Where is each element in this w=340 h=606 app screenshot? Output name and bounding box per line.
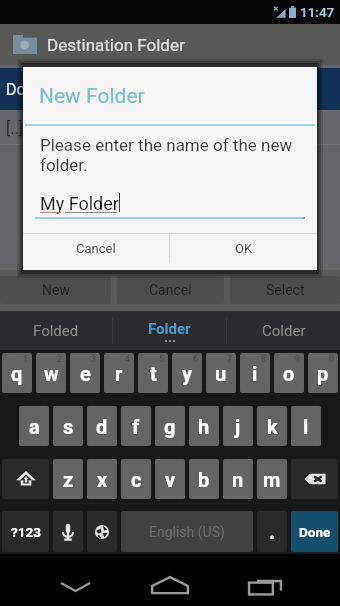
staticText: 11:47 bbox=[300, 4, 335, 20]
staticText: Please enter the name of the new folder. bbox=[40, 135, 298, 175]
staticText: m bbox=[263, 468, 281, 491]
button[interactable]: e bbox=[70, 353, 100, 393]
staticText: 7 bbox=[227, 354, 233, 365]
button[interactable]: q bbox=[2, 353, 32, 393]
button[interactable]: i bbox=[240, 353, 270, 393]
staticText: Destination Folder bbox=[47, 35, 185, 55]
staticText: e bbox=[80, 362, 91, 385]
staticText: Downloads bbox=[6, 80, 86, 99]
button[interactable]: m bbox=[257, 459, 287, 499]
button[interactable]: New bbox=[0, 276, 111, 304]
staticText: My Folder bbox=[40, 193, 119, 214]
staticText: s bbox=[63, 415, 74, 438]
staticText: OK bbox=[235, 241, 253, 256]
staticText: Cancel bbox=[76, 241, 116, 256]
staticText: z bbox=[63, 468, 74, 491]
button[interactable]: Back bbox=[47, 560, 103, 600]
staticText: New Folder bbox=[39, 84, 145, 109]
button[interactable]: j bbox=[223, 406, 253, 446]
button[interactable]: Folded bbox=[0, 311, 112, 350]
button[interactable]: Home bbox=[140, 560, 200, 600]
button[interactable]: w bbox=[36, 353, 66, 393]
button[interactable]: v bbox=[155, 459, 185, 499]
button[interactable]: y bbox=[172, 353, 202, 393]
button[interactable]: u bbox=[206, 353, 236, 393]
button[interactable]: t bbox=[138, 353, 168, 393]
staticText: o bbox=[283, 362, 295, 385]
staticText: b bbox=[198, 468, 210, 491]
button[interactable]: k bbox=[257, 406, 287, 446]
staticText: [..] bbox=[6, 119, 23, 138]
staticText: English (US) bbox=[149, 524, 225, 540]
button[interactable]: b bbox=[189, 459, 219, 499]
staticText: 8 bbox=[261, 354, 267, 365]
staticText: l bbox=[303, 415, 309, 438]
button[interactable]: Cancel bbox=[23, 234, 169, 263]
button[interactable]: Done bbox=[291, 511, 338, 552]
staticText: Select bbox=[266, 282, 305, 298]
staticText: . bbox=[269, 519, 276, 545]
button[interactable]: z bbox=[53, 459, 83, 499]
button[interactable]: l bbox=[291, 406, 321, 446]
staticText: q bbox=[11, 362, 23, 385]
staticText: i bbox=[252, 362, 258, 385]
staticText: t bbox=[150, 362, 157, 385]
staticText: v bbox=[165, 468, 176, 491]
staticText: 9 bbox=[295, 354, 301, 365]
button[interactable]: Cancel bbox=[117, 276, 224, 304]
button[interactable]: Shift bbox=[2, 459, 49, 499]
button[interactable]: r bbox=[104, 353, 134, 393]
staticText: u bbox=[215, 362, 227, 385]
staticText: r bbox=[115, 362, 123, 385]
button[interactable]: Colder bbox=[227, 311, 340, 350]
staticText: 1 bbox=[23, 354, 29, 365]
button[interactable]: OK bbox=[170, 234, 317, 263]
staticText: h bbox=[198, 415, 210, 438]
staticText: 3 bbox=[91, 354, 97, 365]
staticText: p bbox=[317, 362, 329, 385]
staticText: c bbox=[131, 468, 142, 491]
staticText: 0 bbox=[329, 354, 335, 365]
button[interactable]: Select bbox=[230, 276, 340, 304]
staticText: n bbox=[232, 468, 244, 491]
button[interactable]: Voice input bbox=[53, 511, 83, 552]
button[interactable]: d bbox=[87, 406, 117, 446]
staticText: New bbox=[42, 282, 70, 298]
staticText: 6 bbox=[193, 354, 199, 365]
staticText: j bbox=[235, 415, 241, 438]
button[interactable]: h bbox=[189, 406, 219, 446]
button[interactable]: . bbox=[257, 511, 287, 552]
staticText: k bbox=[267, 415, 278, 438]
button[interactable]: English (US) bbox=[121, 511, 253, 552]
staticText: Done bbox=[299, 524, 331, 540]
button[interactable]: p bbox=[308, 353, 338, 393]
button[interactable]: a bbox=[19, 406, 49, 446]
staticText: Colder bbox=[262, 322, 306, 340]
staticText: 2 bbox=[57, 354, 63, 365]
button[interactable]: ?123 bbox=[2, 511, 49, 552]
button[interactable]: s bbox=[53, 406, 83, 446]
staticText: w bbox=[44, 362, 59, 385]
staticText: a bbox=[29, 415, 40, 438]
button[interactable]: Change language bbox=[87, 511, 117, 552]
button[interactable]: g bbox=[155, 406, 185, 446]
button[interactable]: Backspace bbox=[291, 459, 338, 499]
button[interactable]: Downloads bbox=[0, 68, 340, 110]
button[interactable]: Folder bbox=[113, 311, 226, 350]
staticText: f bbox=[132, 415, 140, 438]
button[interactable]: Recent apps bbox=[237, 560, 293, 600]
staticText: y bbox=[182, 362, 193, 385]
staticText: g bbox=[164, 415, 176, 438]
staticText: Cancel bbox=[149, 282, 192, 298]
staticText: ?123 bbox=[11, 524, 41, 540]
staticText: Folded bbox=[33, 322, 79, 340]
staticText: 5 bbox=[159, 354, 165, 365]
button[interactable]: [..] bbox=[0, 113, 340, 144]
button[interactable]: o bbox=[274, 353, 304, 393]
button[interactable]: n bbox=[223, 459, 253, 499]
staticText: d bbox=[96, 415, 108, 438]
button[interactable]: x bbox=[87, 459, 117, 499]
button[interactable]: c bbox=[121, 459, 151, 499]
staticText: x bbox=[97, 468, 108, 491]
button[interactable]: f bbox=[121, 406, 151, 446]
